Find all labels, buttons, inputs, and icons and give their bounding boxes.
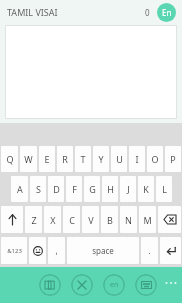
button[interactable]: U: [111, 146, 127, 172]
staticText: space: [92, 245, 114, 256]
staticText: S: [36, 183, 41, 195]
staticText: O: [151, 153, 159, 165]
button[interactable]: Q: [1, 146, 18, 172]
staticText: Y: [98, 153, 104, 165]
button[interactable]: space: [67, 237, 139, 264]
button[interactable]: N: [120, 206, 137, 233]
staticText: L: [162, 183, 167, 195]
staticText: G: [89, 183, 96, 195]
staticText: U: [116, 153, 123, 165]
button[interactable]: P: [165, 146, 181, 172]
button[interactable]: V: [82, 206, 99, 233]
button[interactable]: Shift: [1, 206, 23, 233]
staticText: A: [17, 183, 23, 195]
staticText: M: [143, 214, 152, 226]
button[interactable]: A: [11, 176, 28, 202]
staticText: D: [53, 183, 60, 195]
button[interactable]: G: [84, 176, 100, 202]
button[interactable]: W: [20, 146, 37, 172]
button[interactable]: D: [48, 176, 64, 202]
staticText: B: [107, 214, 113, 226]
button[interactable]: Y: [93, 146, 109, 172]
staticText: Q: [6, 153, 14, 165]
button[interactable]: Emoji: [29, 237, 46, 264]
button[interactable]: Language English: [157, 3, 176, 22]
staticText: W: [24, 153, 33, 165]
button[interactable]: S: [30, 176, 46, 202]
button[interactable]: O: [147, 146, 163, 172]
button[interactable]: Backspace: [158, 206, 181, 233]
button[interactable]: [5, 25, 177, 119]
button[interactable]: K: [138, 176, 154, 202]
staticText: Z: [31, 214, 37, 226]
staticText: P: [170, 153, 176, 165]
staticText: TAMIL VISAI: [7, 6, 58, 18]
staticText: R: [62, 153, 68, 165]
staticText: N: [125, 214, 132, 226]
button[interactable]: I: [129, 146, 145, 172]
staticText: X: [50, 214, 56, 226]
button[interactable]: T: [75, 146, 91, 172]
staticText: ,: [55, 245, 58, 256]
button[interactable]: ,: [48, 237, 65, 264]
button[interactable]: Language: [103, 274, 125, 296]
staticText: I: [135, 153, 139, 165]
button[interactable]: Clear: [71, 274, 93, 296]
button[interactable]: Enter: [160, 237, 181, 264]
button[interactable]: E: [39, 146, 55, 172]
button[interactable]: L: [156, 176, 172, 202]
staticText: F: [72, 183, 77, 195]
button[interactable]: Copy: [39, 274, 61, 296]
staticText: E: [44, 153, 50, 165]
button[interactable]: Keyboard: [135, 274, 157, 296]
button[interactable]: .: [141, 237, 158, 264]
staticText: &123: [7, 247, 22, 255]
staticText: H: [107, 183, 114, 195]
staticText: J: [127, 183, 130, 195]
button[interactable]: Z: [25, 206, 42, 233]
button[interactable]: F: [66, 176, 82, 202]
staticText: C: [69, 214, 75, 226]
button[interactable]: M: [139, 206, 156, 233]
button[interactable]: J: [120, 176, 136, 202]
staticText: V: [88, 214, 94, 226]
staticText: en: [110, 280, 119, 290]
staticText: K: [143, 183, 149, 195]
button[interactable]: R: [57, 146, 73, 172]
button[interactable]: X: [44, 206, 61, 233]
button[interactable]: H: [102, 176, 118, 202]
staticText: T: [80, 153, 86, 165]
staticText: .: [148, 245, 151, 256]
button[interactable]: B: [101, 206, 118, 233]
button[interactable]: &123: [1, 237, 27, 264]
button[interactable]: C: [63, 206, 80, 233]
staticText: En: [162, 7, 172, 18]
button[interactable]: More options: [160, 267, 182, 303]
staticText: 0: [145, 7, 150, 18]
